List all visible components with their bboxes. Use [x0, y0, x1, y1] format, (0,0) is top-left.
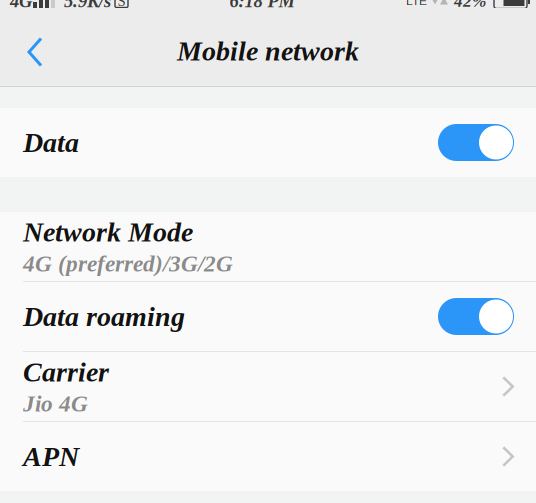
staticText: 6:18 PM	[229, 0, 295, 11]
staticText: Data roaming	[23, 301, 185, 332]
button[interactable]: Network Mode	[0, 212, 536, 281]
staticText: Network Mode	[23, 217, 193, 248]
staticText: Data	[23, 127, 79, 158]
staticText: Carrier	[23, 357, 109, 388]
staticText: LTE	[406, 0, 427, 8]
staticText: 5.9K/s	[64, 0, 111, 11]
button[interactable]: Back	[0, 8, 70, 86]
staticText: 4G	[10, 0, 32, 11]
button[interactable]: Data	[0, 108, 536, 177]
staticText: Mobile network	[177, 35, 359, 66]
button[interactable]: Carrier	[0, 352, 536, 421]
button[interactable]: APN	[0, 422, 536, 491]
staticText: S	[117, 0, 125, 9]
staticText: 4G (preferred)/3G/2G	[23, 251, 233, 276]
staticText: APN	[23, 441, 79, 472]
staticText: Jio 4G	[23, 391, 88, 416]
button[interactable]: Data roaming	[0, 282, 536, 351]
staticText: 42%	[454, 0, 486, 11]
